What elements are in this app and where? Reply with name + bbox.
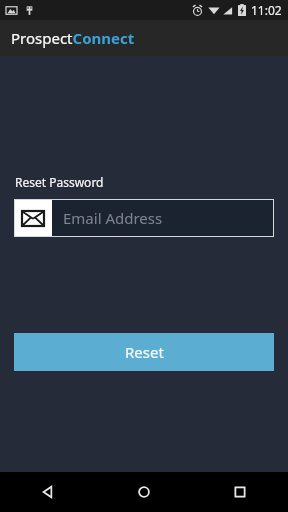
staticText: 11:02 — [251, 2, 282, 18]
staticText: Reset — [125, 342, 164, 362]
staticText: ProspectConnect — [11, 28, 135, 48]
button[interactable]: Back — [0, 472, 96, 512]
staticText: Email Address — [63, 208, 163, 228]
button[interactable]: Home — [96, 472, 192, 512]
button[interactable]: Recents — [192, 472, 288, 512]
staticText: Reset Password — [15, 174, 104, 190]
button[interactable]: Email Address — [14, 199, 274, 237]
button[interactable]: Reset — [14, 333, 274, 371]
